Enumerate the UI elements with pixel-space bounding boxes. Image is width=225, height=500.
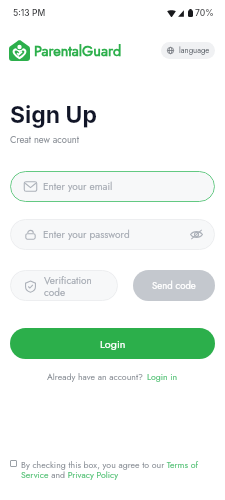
button[interactable]: Login xyxy=(10,328,215,359)
staticText: Verification code xyxy=(44,273,92,299)
staticText: 5:13 PM xyxy=(13,8,46,18)
staticText: Enter your email xyxy=(43,179,113,194)
staticText: Login xyxy=(100,336,126,352)
staticText: 70% xyxy=(195,8,214,18)
button[interactable]: Verification code xyxy=(10,270,118,301)
staticText: language xyxy=(179,45,210,56)
staticText: Sign Up xyxy=(10,101,97,129)
button[interactable]: Agree to terms xyxy=(10,460,17,467)
staticText: Already have an account? xyxy=(47,371,143,384)
button[interactable]: language xyxy=(161,42,215,59)
button[interactable]: Show password xyxy=(190,228,203,241)
staticText: Enter your password xyxy=(43,227,130,242)
button[interactable]: Login in xyxy=(147,371,178,384)
staticText: Send code xyxy=(152,279,196,293)
staticText: Login in xyxy=(147,371,178,384)
staticText: ParentalGuard xyxy=(34,40,122,61)
button[interactable]: Enter your email xyxy=(10,171,215,202)
staticText: Creat new acount xyxy=(10,133,80,147)
button[interactable]: Send code xyxy=(133,270,215,301)
staticText: By checking this box, you agree to our T… xyxy=(21,459,207,481)
button[interactable]: Enter your password xyxy=(10,219,215,250)
